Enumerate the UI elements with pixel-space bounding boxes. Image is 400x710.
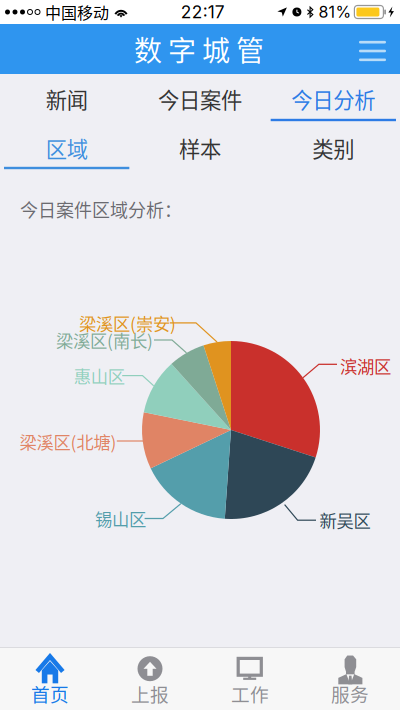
staticText: 梁溪区(南长) (56, 327, 153, 353)
staticText: 区域 (46, 133, 88, 163)
staticText: 今日案件 (158, 84, 242, 114)
staticText: 今日案件区域分析： (20, 196, 182, 222)
staticText: 样本 (179, 133, 221, 163)
staticText: 锡山区 (95, 506, 146, 531)
staticText: 数字城管 (134, 29, 264, 69)
button[interactable]: Menu (345, 24, 400, 74)
button[interactable]: 类别 (267, 124, 400, 172)
staticText: 滨湖区 (340, 353, 391, 378)
button[interactable]: 样本 (133, 124, 267, 172)
staticText: 服务 (331, 680, 369, 707)
staticText: 今日分析 (291, 84, 375, 114)
staticText: 类别 (312, 133, 354, 163)
staticText: 惠山区 (74, 363, 125, 388)
staticText: 81% (318, 2, 351, 22)
button[interactable]: 新闻 (0, 74, 133, 124)
staticText: 首页 (31, 680, 69, 707)
staticText: 梁溪区(北塘) (19, 429, 116, 454)
button[interactable]: 首页 (0, 648, 100, 710)
button[interactable]: 工作 (200, 648, 300, 710)
button[interactable]: 今日案件 (133, 74, 267, 124)
staticText: 工作 (231, 680, 269, 707)
button[interactable]: 区域 (0, 124, 133, 172)
staticText: 22:17 (181, 1, 225, 22)
staticText: 新闻 (46, 84, 88, 114)
staticText: 新吴区 (319, 507, 370, 533)
staticText: 上报 (131, 680, 169, 707)
staticText: 中国移动 (45, 0, 109, 24)
button[interactable]: 服务 (300, 648, 400, 710)
button[interactable]: 今日分析 (267, 74, 400, 124)
staticText: 梁溪区(崇安) (79, 310, 176, 335)
button[interactable]: 上报 (100, 648, 200, 710)
